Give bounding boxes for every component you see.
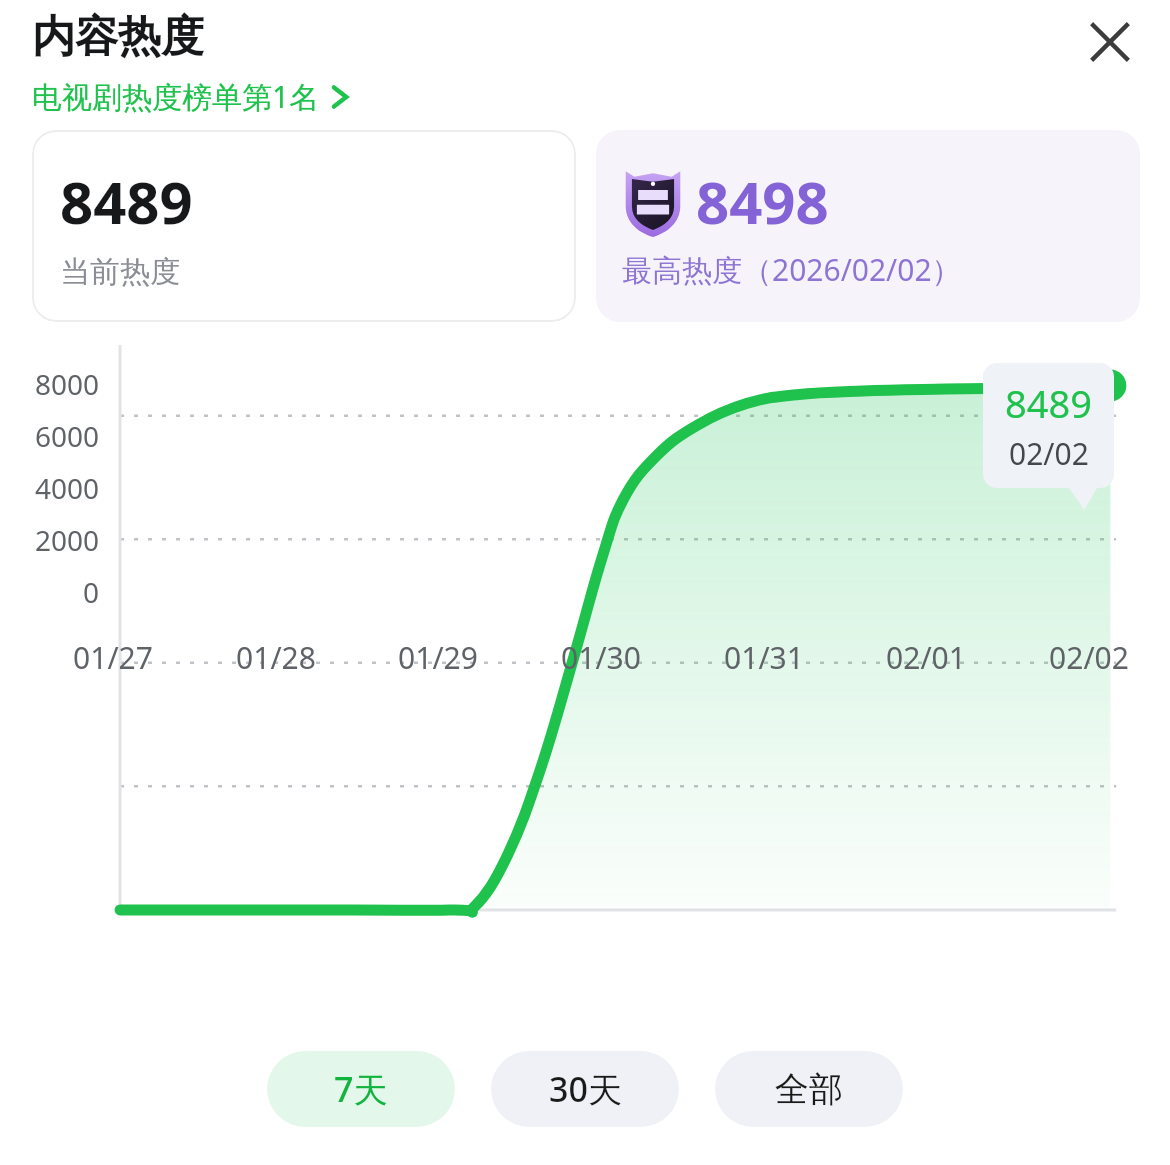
staticText: 电视剧热度榜单第1名 — [32, 76, 320, 117]
staticText: 01/30 — [561, 637, 641, 671]
button[interactable]: 8498 — [596, 130, 1140, 322]
staticText: 8000 — [35, 365, 100, 397]
staticText: 01/27 — [73, 637, 153, 671]
staticText: 8498 — [696, 162, 829, 241]
staticText: 0 — [83, 573, 100, 605]
staticText: 内容热度 — [32, 10, 204, 64]
staticText: 7天 — [334, 1066, 388, 1112]
staticText: 30天 — [549, 1066, 622, 1112]
staticText: 6000 — [35, 417, 100, 449]
staticText: 8489 — [1005, 377, 1092, 429]
button[interactable]: 7天 — [267, 1051, 455, 1127]
button[interactable]: 电视剧热度榜单第1名 — [32, 76, 352, 117]
staticText: 全部 — [775, 1068, 843, 1111]
staticText: 01/31 — [724, 637, 804, 671]
staticText: 8489 — [60, 162, 193, 241]
staticText: 02/01 — [886, 637, 966, 671]
staticText: 最高热度（2026/02/02） — [622, 249, 962, 290]
button[interactable]: 全部 — [715, 1051, 903, 1127]
staticText: 当前热度 — [60, 253, 180, 291]
staticText: 01/29 — [398, 637, 478, 671]
button[interactable]: 30天 — [491, 1051, 679, 1127]
staticText: 4000 — [35, 469, 100, 501]
button[interactable]: 关闭 — [1076, 8, 1144, 76]
staticText: 2000 — [35, 521, 100, 553]
button[interactable]: 8489 — [32, 130, 576, 322]
staticText: 02/02 — [1009, 433, 1089, 474]
staticText: 02/02 — [1049, 637, 1129, 671]
staticText: 01/28 — [236, 637, 316, 671]
